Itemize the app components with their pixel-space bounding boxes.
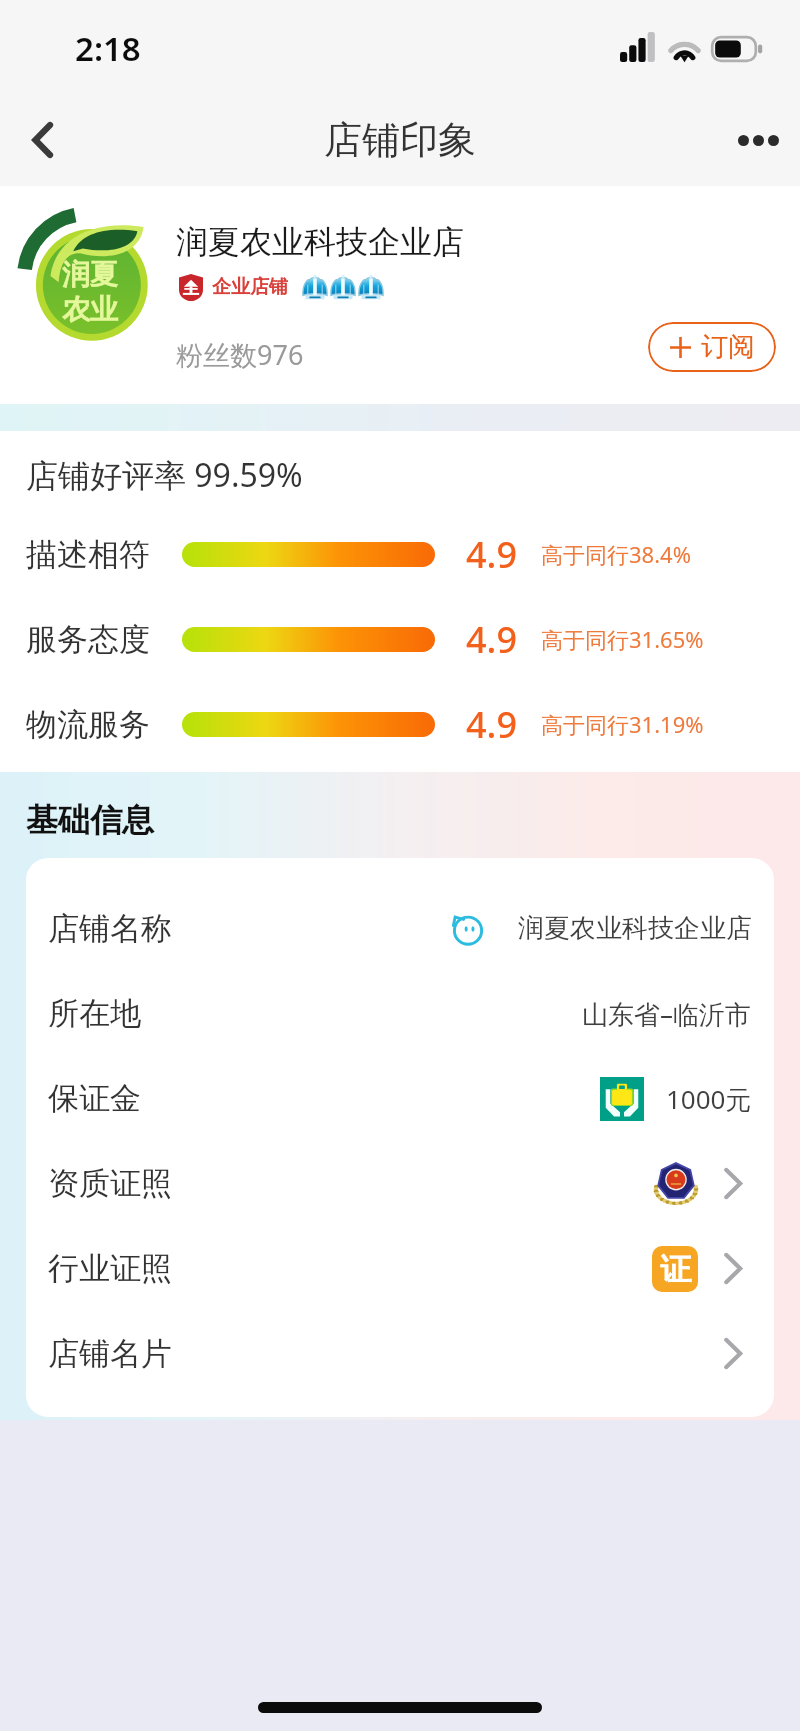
staticText: 店铺好评率 99.59%: [26, 453, 303, 497]
button[interactable]: 所在地: [48, 971, 774, 1056]
staticText: 所在地: [48, 994, 141, 1033]
button[interactable]: 店铺名称: [48, 886, 774, 971]
staticText: 店铺名称: [48, 909, 172, 948]
button[interactable]: 店铺名片: [48, 1311, 774, 1396]
staticText: 1000元: [666, 1081, 752, 1117]
staticText: 润夏农业科技企业店: [176, 222, 464, 262]
staticText: 润夏: [62, 257, 118, 292]
staticText: 物流服务: [26, 705, 150, 744]
staticText: 店铺名片: [48, 1334, 172, 1373]
staticText: 订阅: [701, 330, 755, 364]
staticText: 高于同行38.4%: [541, 539, 691, 569]
staticText: 企业店铺: [212, 275, 288, 299]
button[interactable]: 订阅: [648, 322, 776, 372]
staticText: 4.9: [466, 530, 517, 579]
staticText: 农业: [62, 292, 118, 327]
button[interactable]: 保证金: [48, 1056, 774, 1141]
button[interactable]: Back: [0, 98, 84, 182]
staticText: 高于同行31.19%: [541, 709, 704, 739]
staticText: 描述相符: [26, 535, 150, 574]
staticText: 行业证照: [48, 1249, 172, 1288]
staticText: 润夏农业科技企业店: [518, 912, 752, 945]
staticText: 保证金: [48, 1079, 141, 1118]
button[interactable]: More options: [716, 98, 800, 182]
staticText: 服务态度: [26, 620, 150, 659]
button[interactable]: 行业证照: [48, 1226, 774, 1311]
staticText: 2:18: [75, 26, 141, 71]
button[interactable]: 资质证照: [48, 1141, 774, 1226]
staticText: 粉丝数976: [176, 336, 304, 373]
staticText: 4.9: [466, 700, 517, 749]
staticText: 证: [660, 1250, 691, 1289]
staticText: 高于同行31.65%: [541, 624, 704, 654]
staticText: 基础信息: [26, 800, 154, 840]
staticText: 4.9: [466, 615, 517, 664]
staticText: 店铺印象: [324, 116, 476, 164]
staticText: 资质证照: [48, 1164, 172, 1203]
staticText: 山东省–临沂市: [582, 996, 752, 1032]
